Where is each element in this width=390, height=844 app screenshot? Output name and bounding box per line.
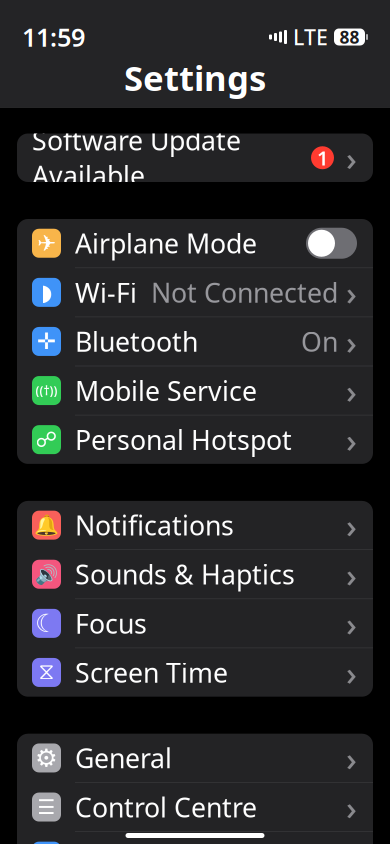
staticText: Personal Hotspot — [75, 422, 292, 457]
staticText: Sounds & Haptics — [75, 556, 295, 592]
staticText: Airplane Mode — [75, 225, 257, 261]
button[interactable]: Software Update Available — [17, 133, 373, 182]
staticText: › — [346, 736, 357, 780]
staticText: ☰ — [37, 796, 55, 818]
staticText: ⧖ — [38, 661, 54, 683]
button[interactable]: ✈ — [17, 219, 373, 267]
staticText: › — [346, 503, 357, 547]
staticText: General — [75, 740, 172, 776]
staticText: › — [346, 270, 357, 314]
staticText: LTE — [293, 23, 328, 51]
button[interactable]: ⚙ — [17, 734, 373, 782]
staticText: ✛ — [37, 329, 56, 354]
staticText: › — [346, 650, 357, 695]
staticText: › — [346, 368, 357, 413]
staticText: Bluetooth — [75, 324, 198, 359]
button[interactable]: ☰ — [17, 783, 373, 831]
button[interactable]: ☾ — [17, 599, 373, 648]
staticText: › — [346, 417, 357, 462]
staticText: 88 — [339, 25, 359, 48]
staticText: ☾ — [35, 609, 58, 638]
staticText: › — [346, 552, 357, 596]
staticText: On — [301, 324, 338, 359]
staticText: ☀ — [35, 842, 57, 844]
staticText: › — [346, 136, 357, 180]
staticText: ✈ — [37, 230, 56, 256]
button[interactable]: Settings — [0, 64, 390, 91]
staticText: Software Update Available — [32, 122, 241, 193]
staticText: Focus — [75, 606, 147, 641]
staticText: ◗ — [40, 279, 52, 305]
staticText: 🔔 — [34, 514, 59, 537]
button[interactable]: ⧖ — [17, 648, 373, 697]
button[interactable]: 🔔 — [17, 501, 373, 549]
staticText: Screen Time — [75, 655, 228, 690]
button[interactable]: ✛ — [17, 317, 373, 366]
button[interactable]: ☍ — [17, 415, 373, 464]
staticText: ((†)) — [35, 383, 57, 398]
staticText: Settings — [124, 54, 266, 100]
staticText: Wi-Fi — [75, 275, 137, 310]
staticText: Mobile Service — [75, 373, 257, 408]
button[interactable]: ((†)) — [17, 366, 373, 415]
staticText: Control Centre — [75, 789, 257, 825]
staticText: 11:59 — [22, 20, 85, 54]
staticText: 🔊 — [35, 564, 58, 585]
staticText: ⚙ — [35, 744, 58, 772]
staticText: ☍ — [35, 427, 57, 452]
staticText: › — [346, 601, 357, 645]
button[interactable]: ◗ — [17, 268, 373, 317]
staticText: 1 — [317, 144, 328, 171]
staticText: › — [346, 319, 357, 364]
staticText: › — [346, 785, 357, 829]
staticText: Not Connected — [151, 275, 338, 310]
button[interactable]: 🔊 — [17, 550, 373, 598]
staticText: Notifications — [75, 507, 234, 543]
button[interactable]: ☀ — [17, 832, 373, 844]
